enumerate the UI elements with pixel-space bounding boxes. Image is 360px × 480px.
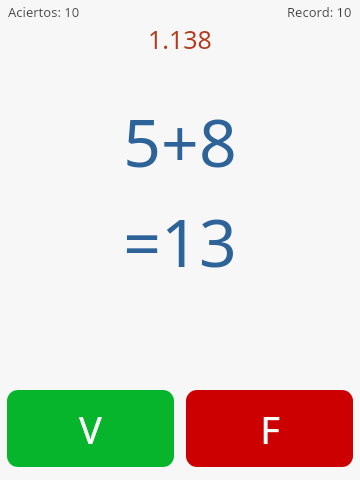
- button[interactable]: F: [186, 390, 353, 467]
- button[interactable]: V: [7, 390, 174, 467]
- button[interactable]: Aciertos: 10: [8, 3, 80, 21]
- staticText: =13: [123, 196, 237, 286]
- staticText: 5+8: [123, 96, 237, 186]
- staticText: Record: 10: [287, 3, 352, 21]
- button[interactable]: Record: 10: [287, 3, 352, 21]
- staticText: F: [260, 403, 280, 455]
- staticText: 1.138: [148, 22, 212, 56]
- staticText: V: [79, 403, 102, 455]
- staticText: Aciertos: 10: [8, 3, 80, 21]
